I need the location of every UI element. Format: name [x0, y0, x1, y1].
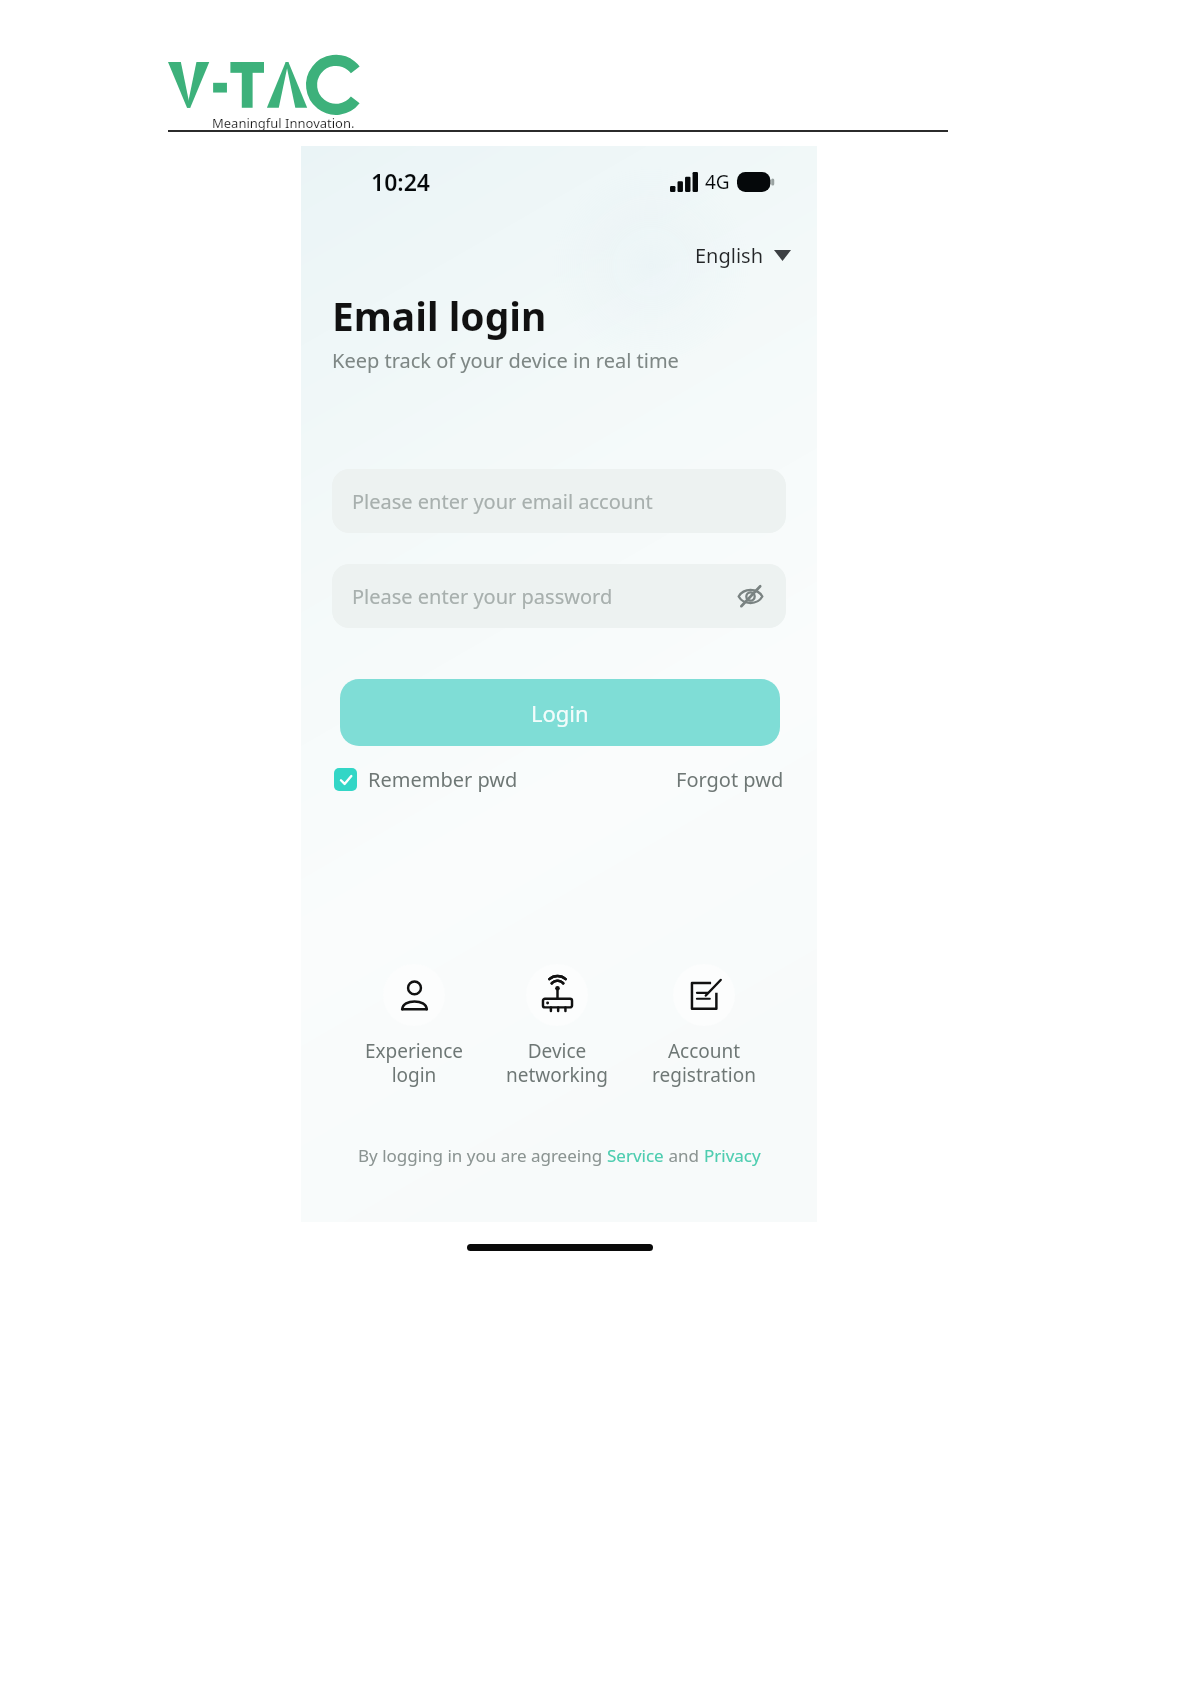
staticText: Please enter your email account: [352, 488, 653, 515]
button[interactable]: Forgot pwd: [674, 762, 786, 797]
button[interactable]: Please enter your password: [332, 564, 786, 628]
staticText: Privacy: [704, 1144, 761, 1167]
button[interactable]: Show password: [728, 574, 772, 618]
staticText: Account registration: [652, 1038, 756, 1087]
staticText: Remember pwd: [368, 766, 518, 793]
staticText: By logging in you are agreeing: [358, 1144, 607, 1167]
staticText: Meaningful Innovation.: [212, 114, 355, 132]
button[interactable]: Account registration: [631, 964, 777, 1087]
staticText: Forgot pwd: [676, 766, 784, 793]
staticText: Please enter your password: [352, 583, 613, 610]
button[interactable]: Device networking: [484, 964, 630, 1087]
staticText: and: [664, 1144, 704, 1167]
button[interactable]: Experience login: [341, 964, 487, 1087]
staticText: English: [695, 242, 764, 269]
staticText: 4G: [705, 169, 730, 195]
button[interactable]: Login: [340, 679, 780, 746]
staticText: Keep track of your device in real time: [332, 347, 679, 374]
button[interactable]: Service: [607, 1144, 664, 1167]
staticText: Experience login: [341, 1038, 487, 1087]
staticText: Service: [607, 1144, 664, 1167]
button[interactable]: Please enter your email account: [332, 469, 786, 533]
staticText: Login: [531, 698, 589, 728]
staticText: 10:24: [371, 166, 430, 197]
staticText: Device networking: [484, 1038, 630, 1087]
button[interactable]: Privacy: [704, 1144, 761, 1167]
staticText: Email login: [332, 289, 547, 342]
button[interactable]: English: [691, 238, 795, 273]
button[interactable]: Remember pwd: [332, 762, 520, 797]
